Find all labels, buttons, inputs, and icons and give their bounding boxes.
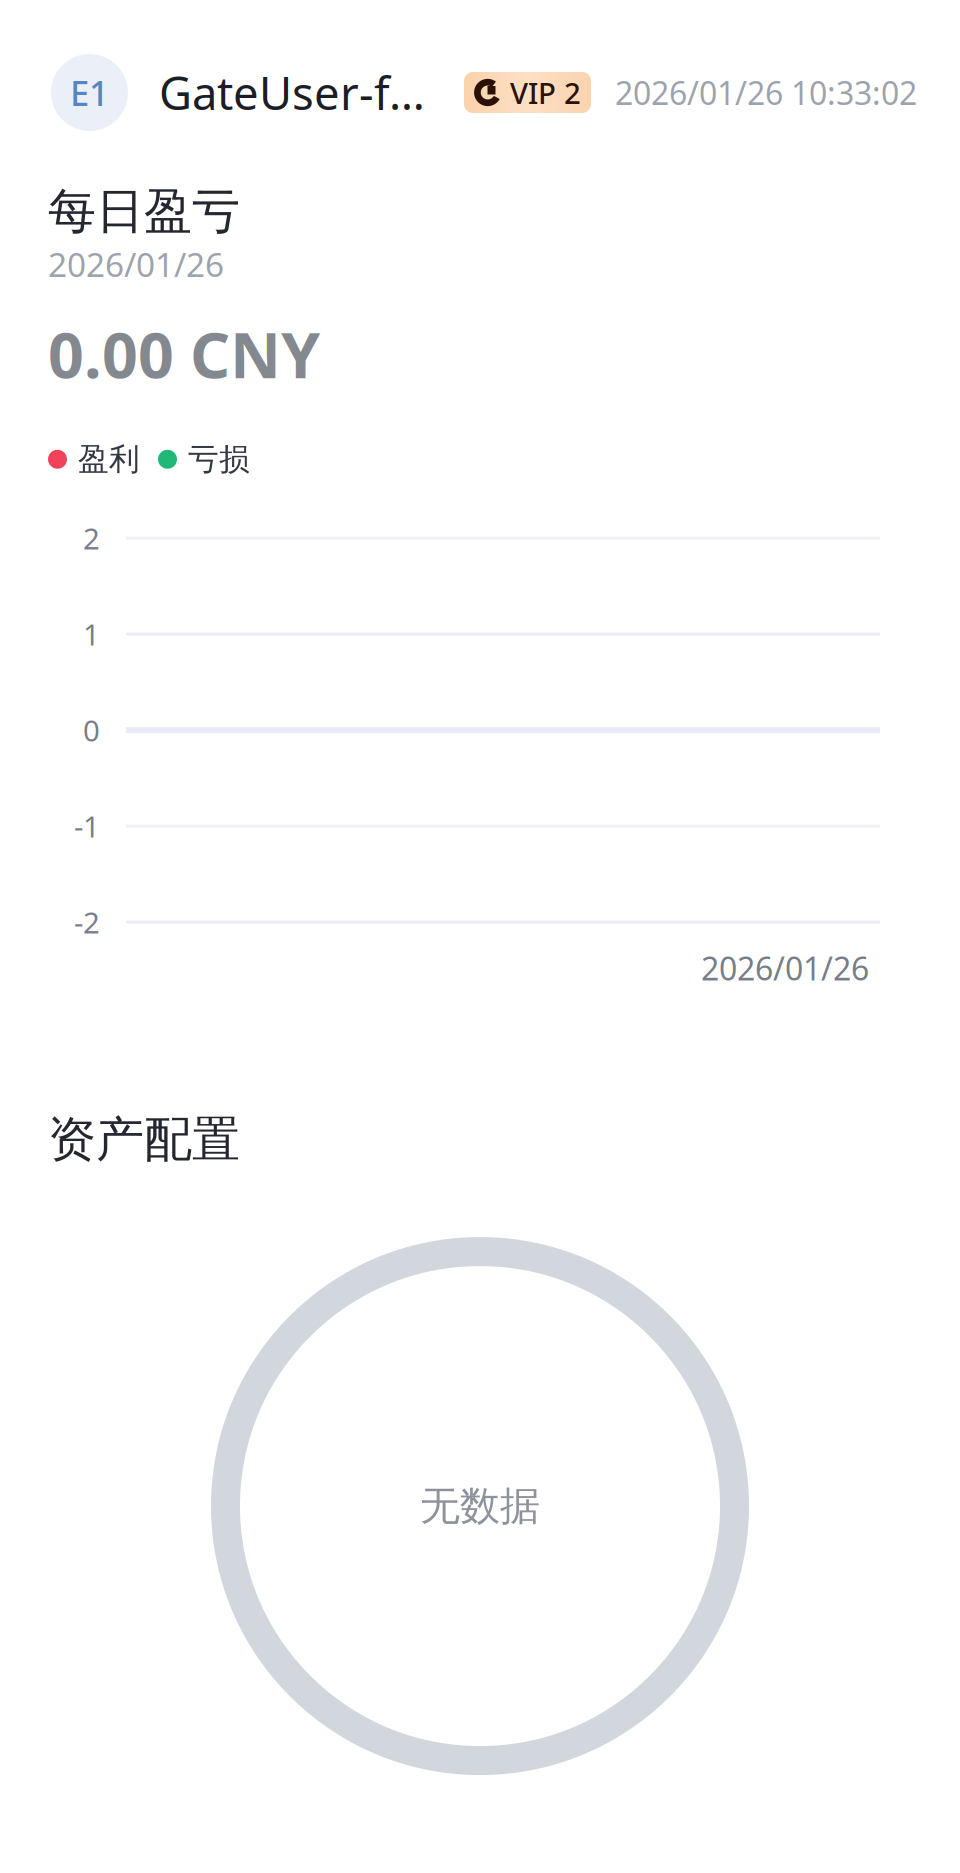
staticText: 无数据 xyxy=(420,1481,540,1531)
staticText: 2026/01/26 xyxy=(48,242,224,286)
staticText: VIP 2 xyxy=(510,73,581,112)
button[interactable]: GateUser-f… xyxy=(159,62,425,123)
staticText: -1 xyxy=(74,807,100,846)
staticText: GateUser-f… xyxy=(159,62,425,123)
staticText: 2026/01/26 10:33:02 xyxy=(615,71,917,114)
staticText: E1 xyxy=(70,69,109,115)
staticText: 盈利 xyxy=(78,440,140,478)
staticText: 亏损 xyxy=(188,440,250,478)
staticText: 每日盈亏 xyxy=(48,182,240,241)
staticText: 资产配置 xyxy=(48,1110,240,1169)
staticText: 0 xyxy=(83,711,100,750)
staticText: 1 xyxy=(83,615,100,654)
staticText: 0.00 CNY xyxy=(48,312,320,395)
button[interactable]: VIP 2 xyxy=(464,72,591,113)
button[interactable]: Account avatar xyxy=(51,54,128,131)
staticText: 2026/01/26 xyxy=(701,947,869,989)
staticText: -2 xyxy=(74,903,100,942)
staticText: 2 xyxy=(83,519,100,558)
